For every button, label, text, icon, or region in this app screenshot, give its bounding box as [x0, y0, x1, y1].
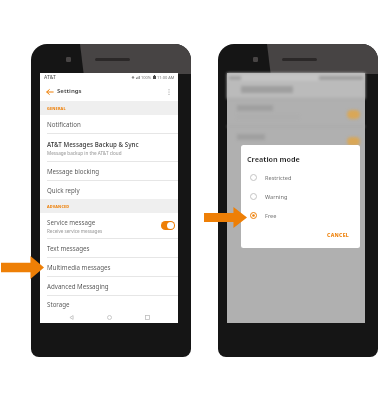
staticText: Service message: [47, 218, 96, 226]
staticText: Receive service messages: [47, 228, 103, 234]
staticText: AT&T: [44, 74, 56, 81]
staticText: Free: [265, 212, 277, 220]
staticText: Quick reply: [47, 186, 80, 194]
button[interactable]: Message blocking: [40, 162, 178, 180]
button[interactable]: CANCEL: [321, 228, 355, 241]
button[interactable]: AT&T Messages Backup & Sync: [40, 134, 178, 161]
button[interactable]: Multimedia messages: [40, 258, 178, 276]
staticText: Text messages: [47, 244, 90, 252]
staticText: 100%: [141, 75, 152, 80]
button[interactable]: Service message: [40, 213, 178, 238]
button[interactable]: Notification: [40, 115, 178, 133]
staticText: Storage: [47, 300, 70, 308]
staticText: 11:00 AM: [157, 75, 175, 80]
staticText: Restricted: [265, 174, 292, 182]
button[interactable]: Back: [64, 311, 78, 323]
button[interactable]: Back: [44, 86, 55, 97]
staticText: AT&T Messages Backup & Sync: [47, 140, 139, 148]
button[interactable]: Service message toggle: [161, 221, 175, 230]
button[interactable]: Text messages: [40, 239, 178, 257]
staticText: Notification: [47, 120, 81, 128]
button[interactable]: Restricted: [241, 168, 360, 187]
staticText: GENERAL: [47, 106, 66, 111]
staticText: Multimedia messages: [47, 263, 111, 271]
staticText: Message backup in the AT&T cloud: [47, 150, 122, 156]
button[interactable]: Storage: [40, 296, 178, 311]
staticText: Creation mode: [247, 154, 300, 164]
staticText: ADVANCED: [47, 204, 70, 209]
staticText: Message blocking: [47, 167, 100, 175]
staticText: CANCEL: [327, 231, 350, 238]
staticText: Advanced Messaging: [47, 282, 109, 290]
button[interactable]: More options: [163, 86, 174, 97]
staticText: Settings: [57, 87, 82, 95]
button[interactable]: Free: [241, 206, 360, 225]
button[interactable]: Recent apps: [140, 311, 154, 323]
button[interactable]: Quick reply: [40, 181, 178, 199]
button[interactable]: Advanced Messaging: [40, 277, 178, 295]
button[interactable]: Home: [102, 311, 116, 323]
staticText: Warning: [265, 193, 288, 201]
button[interactable]: Warning: [241, 187, 360, 206]
